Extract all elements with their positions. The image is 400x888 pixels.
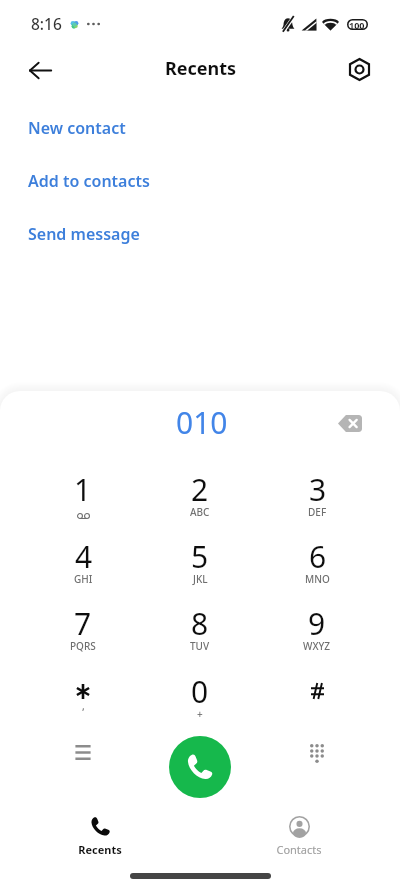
button[interactable]: 2 [156,457,244,517]
button[interactable]: Backspace [328,401,372,445]
staticText: WXYZ [303,639,331,653]
staticText: JKL [193,572,208,586]
staticText: 1 [74,469,92,510]
staticText: 9 [308,603,326,644]
button[interactable]: Add to contacts [0,160,400,202]
staticText: Recents [78,842,122,857]
staticText: , [82,699,85,713]
staticText: 100 [349,19,365,30]
button[interactable]: 4 [39,524,127,584]
staticText: 3 [309,469,327,510]
staticText: 0 [191,671,209,712]
button[interactable]: More options [62,731,104,773]
staticText: Contacts [276,842,322,857]
button[interactable]: Call [169,736,231,798]
button[interactable]: 7 [39,591,127,651]
staticText: + [197,707,203,721]
button[interactable]: Dialpad [296,732,338,774]
button[interactable]: Back [16,46,64,94]
staticText: 7 [74,603,92,644]
button[interactable]: 6 [273,524,361,584]
button[interactable]: , [39,659,127,719]
button[interactable]: 1 [39,457,127,517]
button[interactable]: 0 [156,659,244,719]
staticText: ABC [190,505,210,519]
staticText: 4 [75,536,93,577]
staticText: Add to contacts [28,170,150,192]
staticText: 5 [191,536,209,577]
staticText: Recents [165,56,237,81]
staticText: GHI [74,572,93,586]
button[interactable]: New contact [0,107,400,149]
button[interactable]: Send message [0,213,400,255]
button[interactable]: Recents [52,810,148,864]
staticText: 2 [191,469,209,510]
staticText: 8:16 [31,13,62,34]
staticText: TUV [190,639,210,653]
staticText: DEF [308,505,327,519]
button[interactable]: 8 [156,591,244,651]
button[interactable]: 3 [273,457,361,517]
staticText: Send message [28,223,140,245]
button[interactable] [273,659,361,719]
staticText: 6 [309,536,327,577]
staticText: MNO [305,572,330,586]
staticText: 8 [191,603,209,644]
button[interactable]: Contacts [251,810,347,864]
staticText: PQRS [70,639,96,653]
staticText: New contact [28,117,126,139]
staticText: 010 [176,402,228,443]
button[interactable]: 5 [156,524,244,584]
button[interactable]: Settings [337,47,381,91]
button[interactable]: 9 [273,591,361,651]
